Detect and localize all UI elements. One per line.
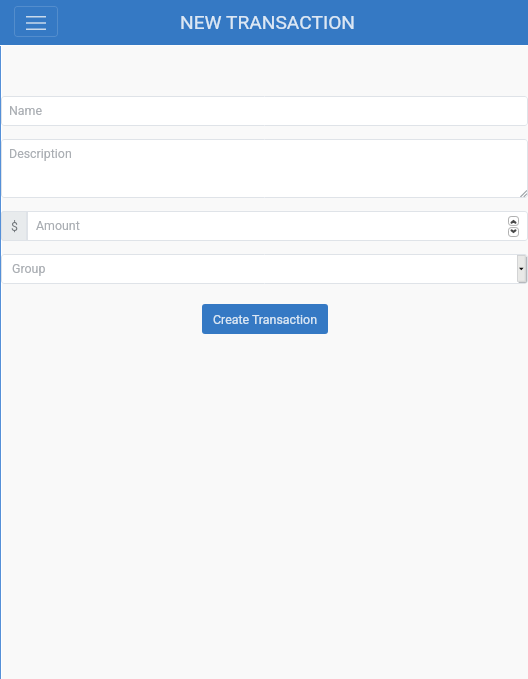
button[interactable]: Increase or decrease amount — [508, 216, 519, 237]
staticText: Amount — [36, 218, 80, 233]
button[interactable]: Name — [1, 96, 528, 126]
staticText: Create Transaction — [213, 312, 317, 327]
button[interactable]: Description — [1, 139, 528, 198]
staticText: Group — [12, 261, 46, 276]
button[interactable]: Create Transaction — [202, 304, 328, 334]
button[interactable]: Group — [1, 254, 528, 284]
staticText: NEW TRANSACTION — [180, 11, 356, 34]
staticText: $ — [11, 219, 18, 234]
staticText: Description — [9, 146, 72, 161]
button[interactable]: Toggle navigation menu — [14, 6, 58, 37]
staticText: Name — [9, 103, 43, 118]
button[interactable]: Choose group — [517, 255, 527, 283]
button[interactable]: Amount — [27, 211, 528, 241]
